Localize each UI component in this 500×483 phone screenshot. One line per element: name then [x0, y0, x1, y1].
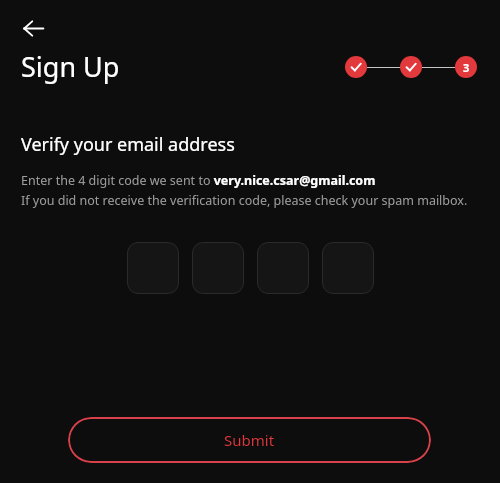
button[interactable]: Step 2 completed: [400, 56, 422, 78]
staticText: 3: [463, 60, 470, 75]
staticText: Sign Up: [21, 48, 120, 85]
staticText: Enter the 4 digit code we sent to very.n…: [21, 172, 376, 189]
button[interactable]: Digit 2 input: [192, 242, 244, 294]
button[interactable]: Step 1 completed: [345, 56, 367, 78]
button[interactable]: Digit 1 input: [127, 242, 179, 294]
button[interactable]: Digit 4 input: [322, 242, 374, 294]
button[interactable]: Submit: [68, 417, 431, 463]
button[interactable]: Back: [13, 8, 53, 48]
button[interactable]: Digit 3 input: [257, 242, 309, 294]
staticText: Submit: [224, 430, 275, 450]
staticText: If you did not receive the verification …: [21, 192, 468, 209]
button[interactable]: Step 3: [455, 56, 477, 78]
staticText: Verify your email address: [21, 132, 235, 157]
